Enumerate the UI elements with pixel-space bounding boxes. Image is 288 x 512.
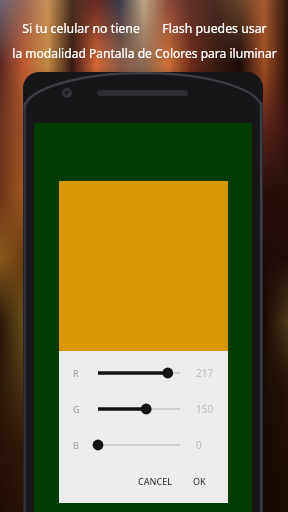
button[interactable]: OK [186,468,213,494]
staticText: Flash puedes usar [162,20,267,37]
staticText: R [73,367,79,379]
button[interactable]: G [59,391,228,427]
staticText: 0 [196,438,202,452]
button[interactable]: R [59,355,228,391]
staticText: 217 [196,366,214,380]
staticText: CANCEL [138,475,173,487]
staticText: G [73,403,80,415]
staticText: 150 [196,402,214,416]
staticText: Si tu celular no tiene [22,20,140,37]
button[interactable]: CANCEL [131,468,180,494]
staticText: la modalidad Pantalla de Colores para il… [12,45,277,61]
staticText: OK [193,475,206,487]
staticText: B [73,439,79,451]
button[interactable]: B [59,427,228,463]
